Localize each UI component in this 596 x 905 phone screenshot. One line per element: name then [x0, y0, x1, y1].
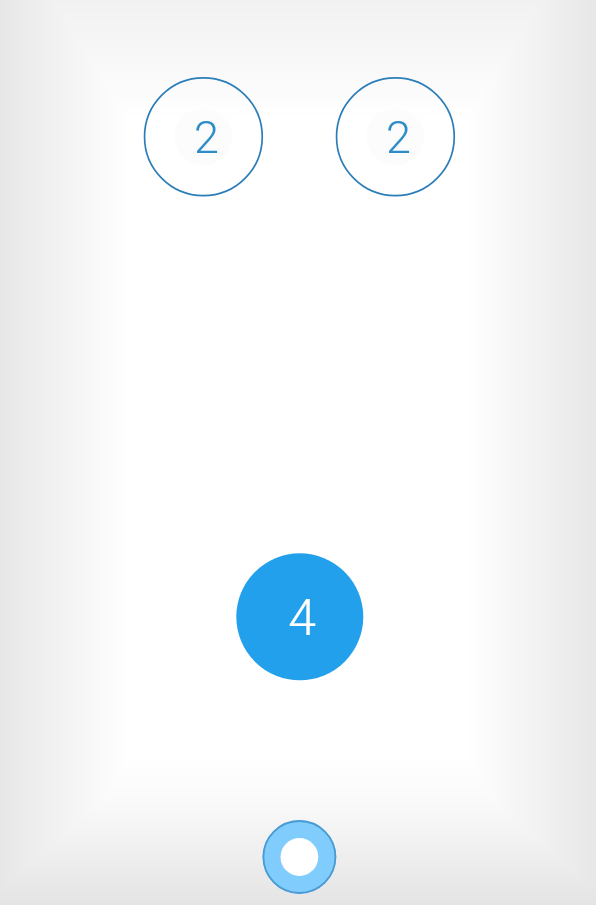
staticText: 2 — [386, 111, 411, 164]
button[interactable]: 2 — [337, 78, 455, 196]
button[interactable]: 2 — [145, 78, 263, 196]
staticText: 4 — [288, 589, 316, 648]
button[interactable]: 4 — [236, 553, 363, 680]
staticText: 2 — [194, 111, 219, 164]
button[interactable]: Reset — [263, 820, 337, 894]
